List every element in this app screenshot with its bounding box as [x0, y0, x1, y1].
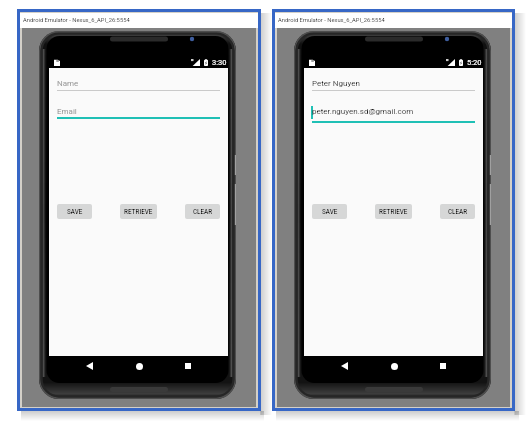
button[interactable]: CLEAR: [440, 204, 475, 219]
staticText: SAVE: [67, 208, 83, 215]
button[interactable]: Back: [334, 356, 354, 376]
staticText: RETRIEVE: [124, 208, 153, 215]
staticText: Peter Nguyen: [312, 79, 360, 88]
button[interactable]: CLEAR: [185, 204, 220, 219]
staticText: 5:20: [467, 58, 482, 67]
staticText: RETRIEVE: [379, 208, 408, 215]
staticText: CLEAR: [193, 208, 213, 215]
button[interactable]: RETRIEVE: [120, 204, 157, 219]
staticText: Name: [57, 79, 79, 88]
staticText: Email: [57, 107, 77, 116]
button[interactable]: Recent apps: [178, 356, 198, 376]
button[interactable]: Recent apps: [433, 356, 453, 376]
staticText: Android Emulator - Nexus_6_API_26:5554: [23, 17, 130, 24]
button[interactable]: SAVE: [57, 204, 92, 219]
button[interactable]: Home: [129, 356, 149, 376]
button[interactable]: Home: [384, 356, 404, 376]
button[interactable]: SAVE: [312, 204, 347, 219]
staticText: CLEAR: [448, 208, 468, 215]
button[interactable]: RETRIEVE: [375, 204, 412, 219]
staticText: peter.nguyen.sd@gmail.com: [312, 107, 414, 116]
staticText: SAVE: [322, 208, 338, 215]
button[interactable]: Back: [79, 356, 99, 376]
staticText: Android Emulator - Nexus_6_API_26:5554: [278, 17, 385, 24]
staticText: 3:30: [212, 58, 227, 67]
